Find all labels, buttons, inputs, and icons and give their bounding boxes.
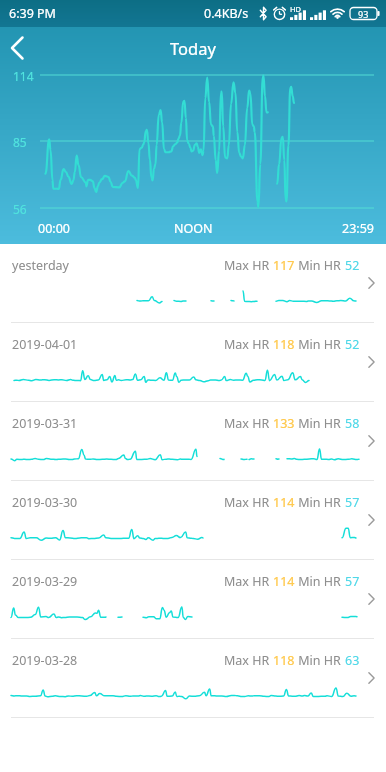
button[interactable]: Back — [0, 30, 34, 66]
staticText: Min HR — [295, 257, 345, 274]
staticText: Min HR — [295, 336, 345, 353]
staticText: Max HR — [224, 494, 273, 511]
button[interactable]: Open details — [362, 431, 382, 451]
staticText: 52 — [345, 257, 360, 274]
staticText: 6:39 PM — [9, 5, 56, 22]
staticText: 114 — [13, 68, 34, 84]
staticText: 58 — [345, 415, 360, 432]
button[interactable]: Open details — [362, 510, 382, 530]
staticText: Max HR — [224, 573, 273, 590]
staticText: HD — [290, 4, 302, 14]
button[interactable]: Open details — [362, 668, 382, 688]
staticText: 56 — [13, 201, 27, 217]
staticText: 117 — [273, 257, 295, 274]
staticText: 2019-03-28 — [12, 652, 78, 669]
staticText: 114 — [273, 573, 295, 590]
staticText: 114 — [273, 494, 295, 511]
staticText: Min HR — [295, 652, 345, 669]
button[interactable]: Open details — [362, 352, 382, 372]
button[interactable]: Open details — [362, 273, 382, 293]
staticText: 133 — [273, 415, 295, 432]
staticText: 2019-03-31 — [12, 415, 78, 432]
staticText: Min HR — [295, 573, 345, 590]
staticText: 0.4KB/s — [204, 5, 249, 22]
button[interactable]: 2019-03-28 — [0, 639, 386, 718]
staticText: 85 — [13, 134, 27, 150]
staticText: 2019-03-29 — [12, 573, 78, 590]
button[interactable]: 2019-03-31 — [0, 402, 386, 481]
staticText: yesterday — [12, 257, 69, 274]
staticText: 63 — [345, 652, 360, 669]
staticText: 57 — [345, 494, 360, 511]
staticText: 23:59 — [342, 220, 374, 237]
staticText: 00:00 — [38, 220, 70, 237]
button[interactable]: Open details — [362, 589, 382, 609]
button[interactable]: 2019-03-30 — [0, 481, 386, 560]
staticText: Max HR — [224, 257, 273, 274]
button[interactable]: yesterday — [0, 244, 386, 323]
staticText: 118 — [273, 652, 295, 669]
staticText: Max HR — [224, 652, 273, 669]
staticText: Today — [170, 37, 216, 59]
staticText: Max HR — [224, 415, 273, 432]
staticText: 52 — [345, 336, 360, 353]
staticText: 57 — [345, 573, 360, 590]
staticText: Max HR — [224, 336, 273, 353]
staticText: 93 — [358, 8, 369, 20]
button[interactable]: 2019-04-01 — [0, 323, 386, 402]
staticText: 2019-04-01 — [12, 336, 78, 353]
staticText: NOON — [174, 220, 213, 237]
button[interactable]: 2019-03-29 — [0, 560, 386, 639]
staticText: Min HR — [295, 415, 345, 432]
staticText: 118 — [273, 336, 295, 353]
staticText: Min HR — [295, 494, 345, 511]
staticText: 2019-03-30 — [12, 494, 78, 511]
